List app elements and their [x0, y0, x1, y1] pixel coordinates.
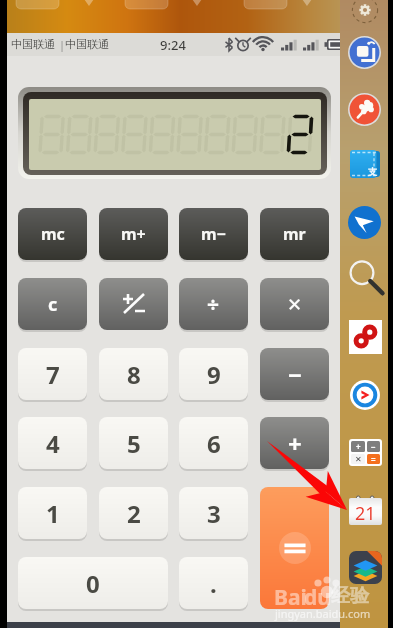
button[interactable]: 9 — [179, 348, 248, 400]
staticText: ✕ — [355, 455, 362, 464]
button[interactable]: Player — [350, 380, 380, 410]
button[interactable]: . — [179, 557, 248, 609]
button[interactable]: 4 — [18, 417, 87, 469]
staticText: 中国联通 — [65, 37, 109, 51]
button[interactable]: 7 — [18, 348, 87, 400]
staticText: 9:24 — [160, 36, 186, 54]
button[interactable]: Pin — [348, 93, 381, 126]
button[interactable]: ÷ — [179, 278, 248, 330]
staticText: Bai — [274, 583, 307, 612]
staticText: ÷ — [207, 290, 220, 319]
staticText: jingyan.baidu.com — [275, 606, 371, 621]
staticText: m− — [201, 223, 226, 245]
staticText: − — [371, 441, 376, 452]
staticText: . — [210, 567, 217, 600]
staticText: m+ — [121, 223, 146, 245]
staticText: 经验 — [331, 584, 369, 608]
staticText: 4 — [46, 427, 60, 460]
button[interactable]: 1 — [18, 487, 87, 539]
button[interactable]: mc — [18, 208, 87, 260]
staticText: ✕ — [287, 294, 303, 315]
staticText: 1 — [46, 497, 60, 530]
button[interactable]: 0 — [18, 557, 168, 609]
button[interactable]: Layers — [349, 551, 382, 584]
button[interactable]: 2 — [99, 487, 168, 539]
button[interactable]: 5 — [99, 417, 168, 469]
button[interactable]: mr — [260, 208, 329, 260]
staticText: 3 — [207, 497, 221, 530]
button[interactable]: Wallet — [350, 150, 380, 178]
staticText: 0 — [86, 567, 100, 600]
button[interactable]: Plus minus — [99, 278, 168, 330]
button[interactable]: 6 — [179, 417, 248, 469]
staticText: 支 — [368, 166, 377, 177]
staticText: du — [304, 583, 331, 612]
button[interactable]: − — [260, 348, 329, 400]
button[interactable]: m+ — [99, 208, 168, 260]
button[interactable]: Copy — [348, 36, 381, 69]
button[interactable]: 8 — [99, 348, 168, 400]
button[interactable]: Equals — [260, 487, 329, 609]
button[interactable]: + — [260, 417, 329, 469]
button[interactable]: Search — [350, 261, 380, 292]
staticText: 8 — [127, 358, 141, 391]
staticText: mr — [283, 223, 306, 245]
button[interactable]: 3 — [179, 487, 248, 539]
button[interactable]: c — [18, 278, 87, 330]
button[interactable]: Mail — [348, 206, 381, 239]
button[interactable]: Settings — [351, 0, 379, 24]
staticText: c — [48, 292, 58, 317]
staticText: + — [288, 427, 302, 460]
button[interactable]: Calculator — [349, 439, 382, 466]
staticText: 21 — [355, 501, 376, 525]
button[interactable]: Red packet — [349, 320, 382, 354]
staticText: 中国联通 — [11, 37, 55, 51]
staticText: 6 — [207, 427, 221, 460]
staticText: 9 — [207, 358, 221, 391]
button[interactable]: Calendar — [349, 496, 382, 525]
staticText: mc — [41, 223, 65, 245]
button[interactable]: m− — [179, 208, 248, 260]
button[interactable]: ✕ — [260, 278, 329, 330]
staticText: 5 — [127, 427, 141, 460]
staticText: − — [288, 358, 302, 391]
staticText: + — [356, 441, 361, 452]
staticText: = — [371, 454, 376, 464]
staticText: 7 — [46, 358, 60, 391]
staticText: 2 — [127, 497, 141, 530]
staticText: | — [59, 37, 66, 52]
